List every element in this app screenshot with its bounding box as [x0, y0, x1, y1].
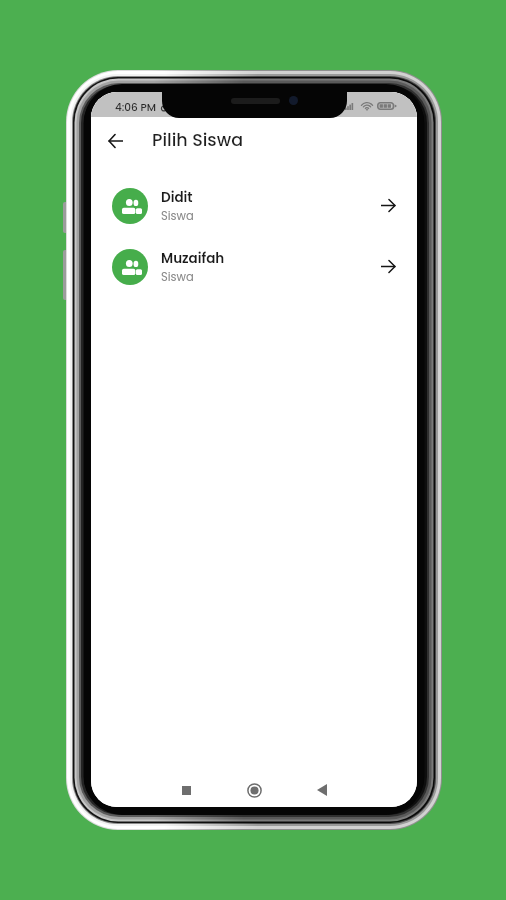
staticText: Muzaifah: [161, 249, 225, 268]
button[interactable]: Recents: [171, 775, 201, 805]
staticText: Siswa: [161, 208, 194, 224]
button[interactable]: Back: [99, 125, 131, 157]
staticText: Didit: [161, 188, 193, 207]
button[interactable]: Muzaifah: [91, 236, 417, 297]
button[interactable]: Didit: [91, 175, 417, 236]
staticText: 4:06 PM: [115, 100, 157, 115]
button[interactable]: Back: [307, 775, 337, 805]
staticText: Siswa: [161, 269, 194, 285]
staticText: Pilih Siswa: [152, 128, 244, 153]
button[interactable]: Home: [239, 775, 269, 805]
